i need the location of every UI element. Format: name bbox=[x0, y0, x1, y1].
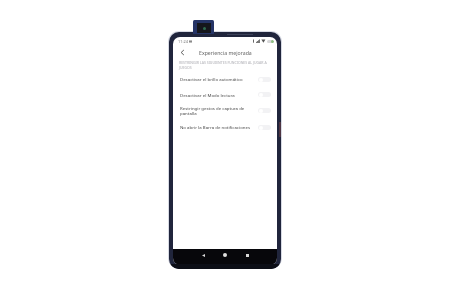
staticText: 11:24 bbox=[178, 39, 188, 44]
button[interactable]: Restringir gestos de captura de pantalla bbox=[173, 102, 277, 119]
staticText: RESTRINGIR LAS SIGUIENTES FUNCIONES AL J… bbox=[179, 60, 269, 70]
button[interactable]: Recent apps bbox=[243, 251, 251, 259]
staticText: Restringir gestos de captura de pantalla bbox=[180, 105, 252, 116]
button[interactable]: Back bbox=[176, 46, 188, 58]
button[interactable]: Home bbox=[221, 251, 229, 259]
button[interactable]: Back bbox=[199, 251, 207, 259]
button[interactable]: Desactivar el brillo automático bbox=[173, 71, 277, 87]
button[interactable]: No abrir la Barra de notificaciones bbox=[173, 119, 277, 135]
button[interactable]: Desactivar el Modo lectura bbox=[173, 87, 277, 102]
staticText: No abrir la Barra de notificaciones bbox=[180, 124, 252, 130]
staticText: Experiencia mejorada bbox=[199, 49, 252, 56]
staticText: Desactivar el Modo lectura bbox=[180, 92, 252, 98]
staticText: Desactivar el brillo automático bbox=[180, 76, 252, 82]
